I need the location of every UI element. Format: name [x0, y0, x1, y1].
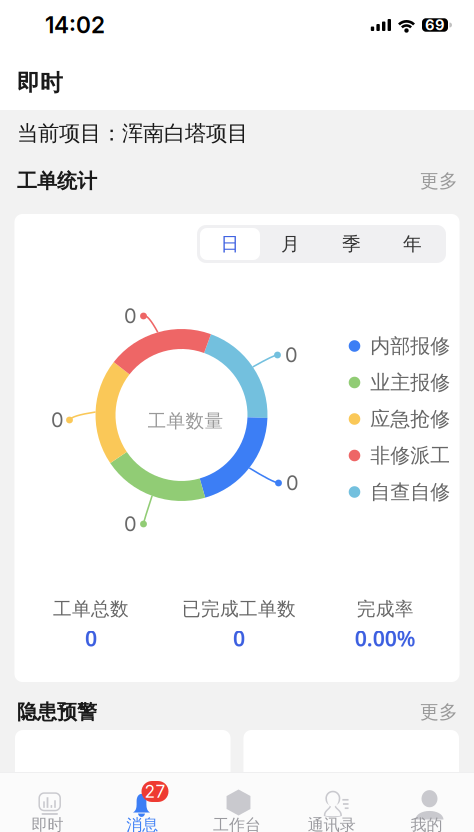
staticText: 工单数量 — [147, 409, 223, 433]
staticText: 0 — [124, 512, 137, 536]
button[interactable]: 日 — [200, 228, 260, 260]
button[interactable]: 工作台 — [190, 772, 284, 832]
staticText: 通讯录 — [308, 815, 356, 832]
staticText: 月 — [281, 232, 300, 256]
staticText: 0 — [124, 304, 137, 328]
staticText: 即时 — [31, 815, 63, 832]
staticText: 消息 — [126, 815, 158, 832]
button[interactable]: 季 — [321, 228, 382, 260]
button[interactable]: 通讯录 — [284, 772, 379, 832]
staticText: 完成率 — [357, 597, 414, 621]
button[interactable]: 更多 — [420, 700, 458, 724]
staticText: 0 — [85, 624, 97, 653]
staticText: 27 — [144, 781, 165, 802]
staticText: 应急抢修 — [370, 406, 450, 432]
staticText: 0.00% — [355, 624, 416, 653]
staticText: 14:02 — [45, 11, 105, 39]
staticText: 更多 — [420, 169, 458, 193]
staticText: 年 — [403, 232, 422, 256]
button[interactable]: 即时 — [0, 772, 95, 832]
staticText: 季 — [342, 232, 361, 256]
staticText: 自查自修 — [370, 479, 450, 505]
staticText: 即时 — [17, 69, 63, 97]
button[interactable]: 消息 — [95, 772, 190, 832]
button[interactable]: 月 — [260, 228, 321, 260]
staticText: 非修派工 — [370, 443, 450, 468]
staticText: 0 — [285, 343, 298, 367]
staticText: 业主报修 — [370, 370, 450, 395]
staticText: 0 — [286, 471, 299, 495]
staticText: 工作台 — [213, 815, 261, 832]
staticText: 内部报修 — [370, 333, 450, 359]
staticText: 工单统计 — [17, 168, 97, 194]
staticText: 工单总数 — [53, 597, 129, 621]
staticText: 69 — [425, 16, 445, 34]
staticText: 隐患预警 — [17, 699, 97, 725]
staticText: 我的 — [411, 815, 443, 832]
button[interactable]: 更多 — [420, 169, 458, 193]
button[interactable]: 年 — [382, 228, 443, 260]
staticText: 0 — [233, 624, 245, 653]
staticText: 日 — [220, 232, 239, 256]
staticText: 更多 — [420, 700, 458, 724]
button[interactable]: 我的 — [379, 772, 474, 832]
staticText: 已完成工单数 — [182, 597, 296, 621]
staticText: 0 — [51, 408, 64, 432]
staticText: 当前项目：浑南白塔项目 — [17, 120, 248, 147]
